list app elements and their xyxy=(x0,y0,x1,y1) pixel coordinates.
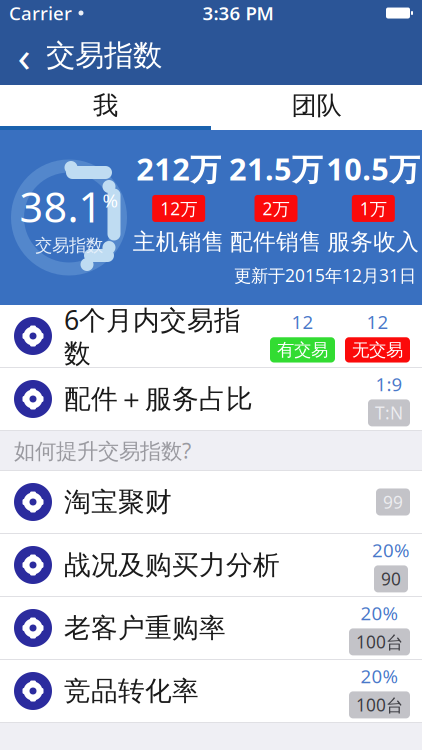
staticText: 淘宝聚财 xyxy=(64,486,172,518)
staticText: T:N xyxy=(375,401,403,424)
staticText: 我 xyxy=(93,90,118,121)
staticText: 配件销售 xyxy=(230,228,322,256)
staticText: 100台 xyxy=(356,630,403,653)
staticText: 6个月内交易指数 xyxy=(64,302,241,370)
button[interactable]: 我 xyxy=(0,85,211,126)
staticText: ‹ xyxy=(17,27,30,84)
staticText: % xyxy=(102,188,118,213)
staticText: 100台 xyxy=(356,693,403,716)
staticText: 交易指数 xyxy=(35,235,103,256)
staticText: 2万 xyxy=(262,197,289,220)
staticText: 12万 xyxy=(160,197,197,220)
staticText: 10.5万 xyxy=(326,148,420,189)
button[interactable]: 配件＋服务占比 xyxy=(0,368,422,431)
staticText: 战况及购买力分析 xyxy=(64,549,280,581)
staticText: 12 xyxy=(291,309,313,334)
staticText: 212万 xyxy=(136,148,221,189)
staticText: 21.5万 xyxy=(229,148,323,189)
button[interactable]: 老客户重购率 xyxy=(0,597,422,660)
staticText: 更新于2015年12月31日 xyxy=(234,264,416,287)
staticText: Carrier xyxy=(9,1,72,25)
staticText: 20% xyxy=(360,664,398,688)
button[interactable]: 战况及购买力分析 xyxy=(0,534,422,597)
staticText: 1万 xyxy=(360,197,387,220)
button[interactable]: 淘宝聚财 xyxy=(0,471,422,534)
staticText: 服务收入 xyxy=(327,228,419,256)
staticText: 3:36 PM xyxy=(202,1,273,25)
staticText: 配件＋服务占比 xyxy=(64,383,253,415)
staticText: 90 xyxy=(381,567,401,590)
staticText: 38.1 xyxy=(19,179,102,234)
staticText: 20% xyxy=(372,538,410,562)
staticText: 老客户重购率 xyxy=(64,612,226,644)
staticText: 20% xyxy=(360,601,398,625)
button[interactable]: 6个月内交易指数 xyxy=(0,305,422,368)
staticText: 交易指数 xyxy=(46,37,162,73)
staticText: 99 xyxy=(383,490,403,513)
button[interactable]: 竞品转化率 xyxy=(0,660,422,723)
staticText: 无交易 xyxy=(352,339,403,360)
staticText: 1:9 xyxy=(375,372,402,396)
staticText: 12 xyxy=(366,309,388,334)
button[interactable]: Back xyxy=(2,32,46,78)
staticText: 如何提升交易指数? xyxy=(14,436,191,465)
staticText: 有交易 xyxy=(277,339,328,360)
staticText: 竞品转化率 xyxy=(64,675,199,707)
staticText: 团队 xyxy=(291,90,341,121)
button[interactable]: 团队 xyxy=(211,85,422,126)
staticText: 主机销售 xyxy=(133,228,225,256)
